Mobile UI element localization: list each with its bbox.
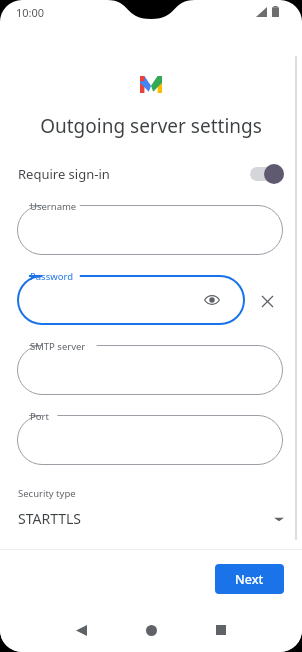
staticText: SMTP server [30, 340, 86, 353]
button[interactable]: Port [17, 415, 283, 465]
staticText: Username [30, 200, 77, 213]
button[interactable]: Require sign-in [0, 158, 302, 190]
staticText: 10:00 [16, 5, 45, 20]
staticText: STARTTLS [18, 509, 82, 528]
button[interactable]: SMTP server [17, 345, 283, 395]
button[interactable]: Show password [201, 289, 223, 311]
staticText: Next [235, 571, 264, 588]
staticText: Require sign-in [18, 165, 110, 183]
staticText: Security type [18, 487, 76, 500]
staticText: Password [30, 270, 73, 283]
button[interactable]: Security type [0, 487, 302, 528]
staticText: Outgoing server settings [0, 113, 302, 139]
button[interactable]: Password [17, 275, 245, 325]
button[interactable]: Require sign-in toggle [250, 164, 284, 184]
button[interactable]: Recent apps [204, 613, 238, 647]
button[interactable]: Username [17, 205, 283, 255]
button[interactable]: Back [64, 613, 98, 647]
button[interactable]: Home [134, 613, 168, 647]
button[interactable]: Clear password [258, 292, 276, 310]
button[interactable]: Next [215, 564, 284, 594]
staticText: Port [30, 410, 49, 423]
